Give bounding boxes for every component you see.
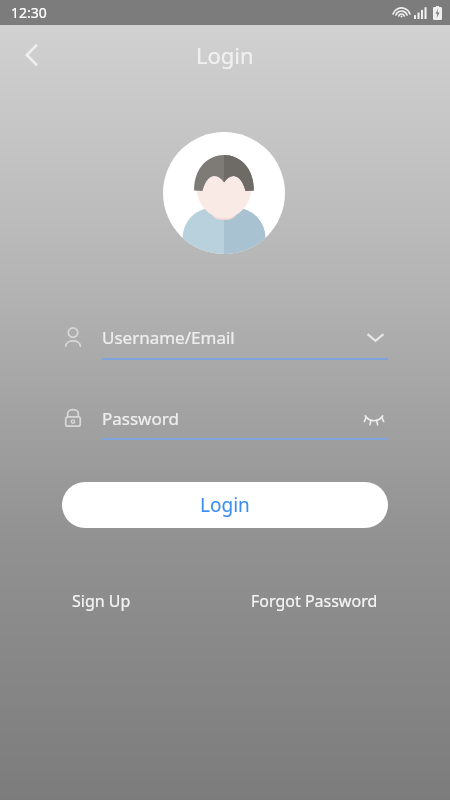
staticText: Sign Up (72, 590, 131, 612)
staticText: Username/Email (102, 326, 235, 349)
button[interactable]: Login (62, 482, 388, 528)
button[interactable]: Show accounts (362, 324, 388, 350)
staticText: Login (196, 40, 254, 70)
button[interactable]: Username/Email (62, 316, 388, 358)
staticText: 12:30 (11, 3, 47, 22)
button[interactable]: Password (62, 398, 388, 438)
button[interactable]: Show password (360, 404, 388, 432)
button[interactable]: Back (8, 31, 56, 79)
staticText: Password (102, 407, 179, 430)
button[interactable]: Sign Up (62, 584, 141, 618)
staticText: Login (200, 492, 250, 518)
staticText: Forgot Password (251, 590, 378, 612)
button[interactable]: Forgot Password (241, 584, 388, 618)
